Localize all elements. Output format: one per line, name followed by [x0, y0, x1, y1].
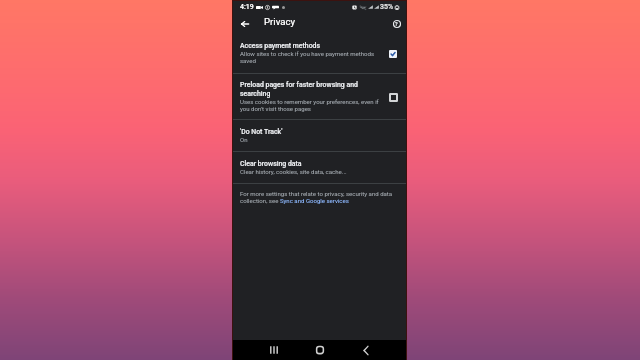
staticText: 35% [380, 3, 394, 11]
staticText: On [240, 136, 248, 143]
staticText: For more settings that relate to privacy… [240, 190, 399, 205]
button[interactable]: Home [309, 340, 331, 360]
staticText: Clear browsing data [240, 160, 302, 168]
staticText: Clear history, cookies, site data, cache… [240, 168, 347, 175]
button[interactable]: Clear browsing data [233, 152, 406, 183]
staticText: 'Do Not Track' [240, 128, 283, 136]
staticText: Uses cookies to remember your preference… [240, 98, 383, 113]
button[interactable]: Preload pages for faster browsing and se… [233, 74, 406, 119]
button[interactable]: Access payment methods [233, 34, 406, 73]
staticText: Access payment methods [240, 42, 321, 50]
button[interactable]: Back [355, 340, 377, 360]
staticText: Preload pages for faster browsing and se… [240, 81, 383, 98]
staticText: Allow sites to check if you have payment… [240, 50, 383, 65]
button[interactable]: Access payment methods [386, 47, 400, 61]
button[interactable]: Preload pages for faster browsing and se… [386, 90, 400, 104]
button[interactable]: Help and feedback [389, 16, 404, 31]
staticText: ? [395, 21, 398, 27]
button[interactable]: Navigate up [236, 15, 253, 32]
button[interactable]: Recent apps [263, 340, 285, 360]
staticText: 4:19 [240, 3, 254, 11]
button[interactable]: 'Do Not Track' [233, 120, 406, 151]
staticText: Privacy [264, 16, 296, 27]
